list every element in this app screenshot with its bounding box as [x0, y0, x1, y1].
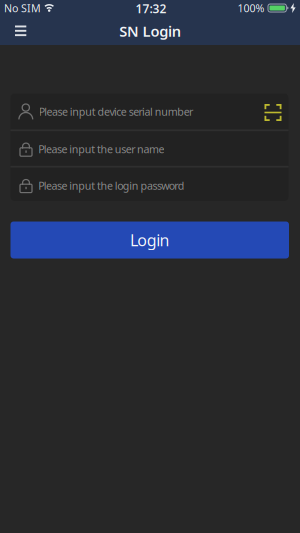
button[interactable]: User name: [10, 131, 288, 167]
button[interactable]: Login password: [10, 167, 288, 203]
staticText: SN Login: [119, 21, 181, 41]
staticText: 100%: [237, 1, 264, 15]
staticText: Login: [130, 229, 169, 251]
button[interactable]: Menu: [6, 17, 36, 45]
staticText: Please input device serial number: [39, 104, 193, 119]
button[interactable]: Device serial number: [10, 93, 288, 129]
staticText: Please input the user name: [38, 142, 164, 156]
staticText: No SIM: [4, 1, 41, 15]
button[interactable]: Login: [10, 221, 289, 258]
staticText: 17:32: [135, 0, 166, 16]
staticText: Please input the login password: [38, 178, 185, 193]
button[interactable]: Scan QR code: [259, 97, 286, 127]
